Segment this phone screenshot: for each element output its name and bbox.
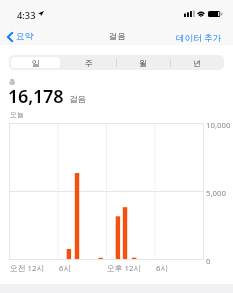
other: Battery (208, 11, 223, 17)
staticText: 16,178 (8, 84, 64, 109)
staticText: 6시 (59, 263, 72, 274)
staticText: 5,000 (206, 188, 226, 199)
other: Cellular signal (184, 10, 195, 17)
staticText: 년 (193, 58, 201, 68)
other: Wi-Fi (197, 10, 205, 17)
other: Location (38, 11, 44, 16)
staticText: 걸음 (69, 94, 87, 105)
button[interactable]: 월 (116, 55, 170, 70)
staticText: 0 (206, 256, 211, 267)
staticText: 4:33 (17, 9, 36, 22)
staticText: 오후 12시 (107, 263, 142, 274)
staticText: 총 (9, 77, 16, 86)
staticText: 일 (32, 58, 40, 68)
button[interactable]: 요약 (3, 30, 40, 44)
button[interactable]: 일 (9, 55, 62, 70)
staticText: 월 (139, 58, 147, 68)
staticText: 요약 (16, 31, 34, 42)
staticText: 6시 (156, 263, 169, 274)
staticText: 10,000 (206, 120, 231, 131)
staticText: 오전 12시 (10, 263, 45, 274)
button[interactable]: 년 (170, 55, 224, 70)
staticText: 주 (85, 58, 93, 68)
button[interactable]: 데이터 추가 (172, 29, 227, 46)
staticText: 걸음 (109, 31, 126, 41)
staticText: 오늘 (10, 110, 24, 119)
button[interactable]: 주 (62, 55, 116, 70)
